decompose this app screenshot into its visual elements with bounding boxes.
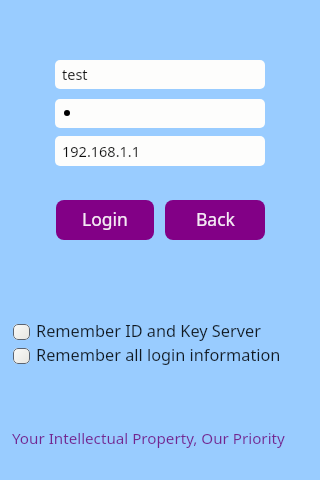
staticText: Remember all login information (36, 344, 281, 366)
button[interactable]: Key server address input field (55, 136, 265, 166)
staticText: 192.168.1.1 (62, 141, 141, 161)
button[interactable]: Login (56, 200, 154, 240)
button[interactable]: Remember all login information (13, 345, 281, 367)
button[interactable]: Password input field (55, 99, 265, 128)
button[interactable]: User name input field (55, 60, 265, 89)
button[interactable]: Remember ID and Key Server (13, 321, 261, 343)
staticText: Login (82, 207, 128, 231)
staticText: Your Intellectual Property, Our Priority (12, 428, 285, 449)
staticText: test (62, 64, 88, 84)
staticText: Back (196, 207, 235, 231)
staticText: Remember ID and Key Server (36, 320, 261, 342)
button[interactable]: Back (165, 200, 265, 240)
